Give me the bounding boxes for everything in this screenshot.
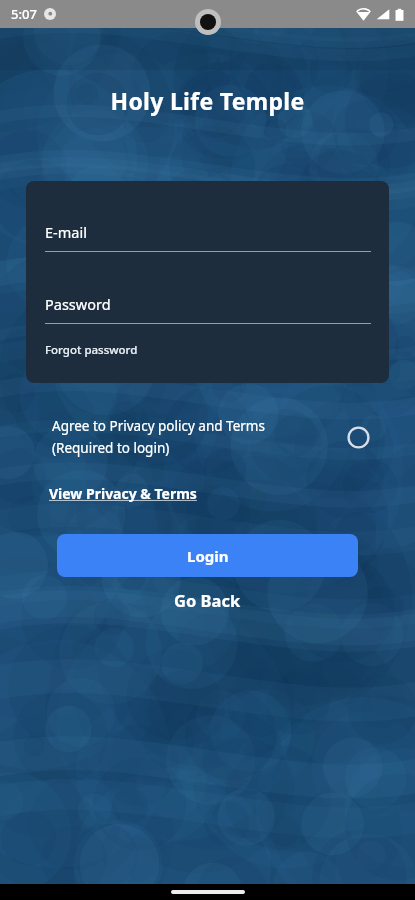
button[interactable]: Forgot password — [45, 342, 138, 358]
staticText: (Required to login) — [52, 439, 170, 457]
button[interactable]: Go Back — [0, 589, 415, 611]
button[interactable]: Login — [57, 534, 358, 577]
staticText: 5:07 — [11, 5, 37, 23]
staticText: Go Back — [174, 589, 241, 611]
staticText: Holy Life Temple — [0, 85, 415, 116]
button[interactable]: Agree to privacy policy checkbox — [341, 420, 375, 454]
staticText: Login — [187, 546, 229, 566]
staticText: View Privacy & Terms — [49, 484, 197, 503]
staticText: Agree to Privacy policy and Terms — [52, 417, 265, 435]
button[interactable]: View Privacy & Terms — [49, 484, 197, 503]
staticText: Forgot password — [45, 342, 138, 358]
staticText: Password — [45, 294, 111, 314]
staticText: E-mail — [45, 222, 87, 242]
